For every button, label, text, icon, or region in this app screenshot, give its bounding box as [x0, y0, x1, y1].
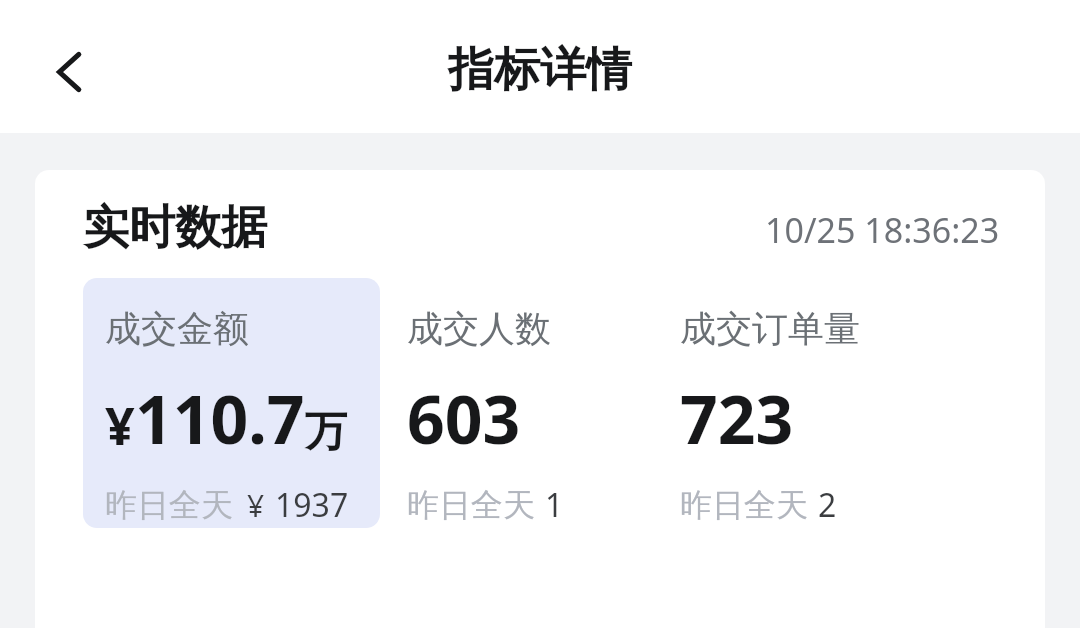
button[interactable]: 成交订单量: [680, 278, 970, 528]
staticText: 昨日全天: [105, 485, 233, 525]
staticText: 723: [680, 373, 794, 463]
staticText: 1: [545, 483, 564, 527]
staticText: 昨日全天: [407, 485, 535, 525]
staticText: 成交金额: [105, 306, 249, 351]
staticText: 昨日全天: [680, 485, 808, 525]
staticText: 成交人数: [407, 306, 551, 351]
button[interactable]: Back: [30, 32, 110, 112]
staticText: 实时数据: [83, 199, 267, 257]
staticText: 110.7: [135, 373, 305, 463]
staticText: ¥: [105, 389, 135, 460]
staticText: ¥: [247, 485, 265, 526]
staticText: 1937: [275, 483, 349, 527]
button[interactable]: 成交人数: [407, 278, 697, 528]
button[interactable]: 成交金额: [83, 278, 380, 528]
staticText: 603: [407, 373, 521, 463]
staticText: 10/25 18:36:23: [765, 207, 1000, 253]
staticText: 万: [305, 406, 347, 459]
staticText: 指标详情: [0, 41, 1080, 99]
staticText: 2: [818, 483, 837, 527]
staticText: 成交订单量: [680, 306, 860, 351]
